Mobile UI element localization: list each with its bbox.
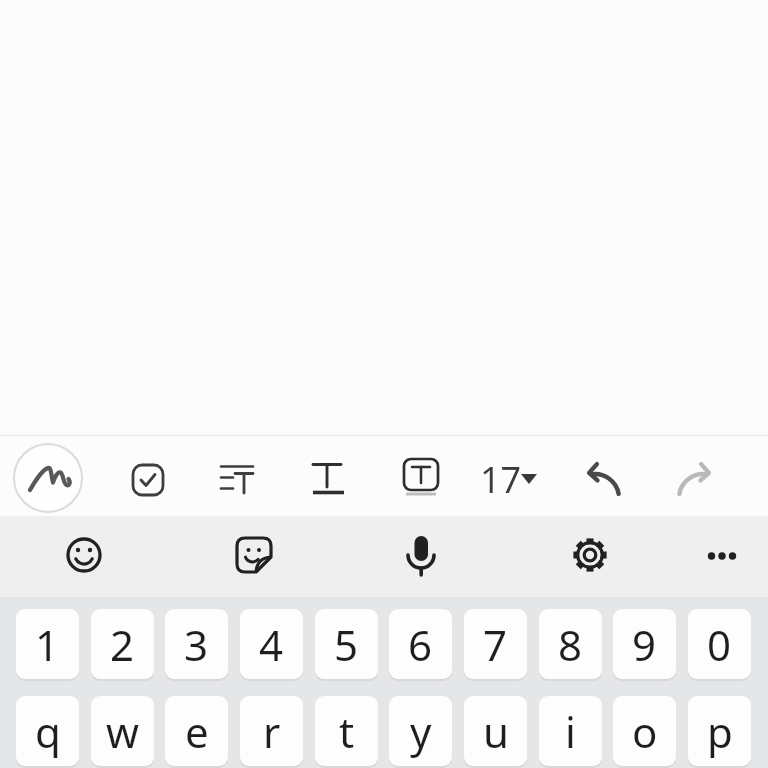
staticText: 0 bbox=[707, 616, 732, 673]
button[interactable]: 7 bbox=[464, 609, 527, 681]
staticText: u bbox=[483, 703, 509, 760]
button[interactable]: 1 bbox=[16, 609, 79, 681]
staticText: y bbox=[410, 703, 432, 760]
staticText: 1 bbox=[35, 616, 60, 673]
button[interactable] bbox=[217, 460, 257, 500]
button[interactable]: 2 bbox=[91, 609, 154, 681]
staticText: 4 bbox=[259, 616, 284, 673]
staticText: e bbox=[185, 703, 209, 760]
staticText: w bbox=[106, 703, 140, 760]
button[interactable]: r bbox=[240, 696, 303, 768]
staticText: r bbox=[263, 703, 281, 760]
button[interactable]: u bbox=[464, 696, 527, 768]
button[interactable]: 3 bbox=[165, 609, 228, 681]
button[interactable]: t bbox=[315, 696, 378, 768]
staticText: o bbox=[632, 703, 658, 760]
button[interactable]: p bbox=[688, 696, 751, 768]
button[interactable] bbox=[62, 533, 106, 577]
staticText: i bbox=[565, 703, 576, 760]
button[interactable]: 9 bbox=[613, 609, 676, 681]
button[interactable] bbox=[307, 459, 347, 499]
button[interactable]: w bbox=[91, 696, 154, 768]
staticText: 5 bbox=[334, 616, 359, 673]
button[interactable] bbox=[568, 533, 612, 577]
staticText: t bbox=[339, 703, 355, 760]
button[interactable]: o bbox=[613, 696, 676, 768]
staticText: 6 bbox=[408, 616, 433, 673]
button[interactable]: e bbox=[165, 696, 228, 768]
button[interactable] bbox=[700, 534, 744, 578]
button[interactable]: q bbox=[16, 696, 79, 768]
button[interactable]: y bbox=[389, 696, 452, 768]
button[interactable] bbox=[129, 461, 167, 499]
button[interactable]: 6 bbox=[389, 609, 452, 681]
button[interactable] bbox=[664, 455, 714, 503]
button[interactable] bbox=[576, 455, 626, 503]
button[interactable] bbox=[400, 456, 442, 498]
button[interactable]: i bbox=[539, 696, 602, 768]
button[interactable]: 4 bbox=[240, 609, 303, 681]
button[interactable]: 0 bbox=[688, 609, 751, 681]
staticText: 9 bbox=[632, 616, 657, 673]
staticText: q bbox=[35, 703, 61, 760]
button[interactable] bbox=[232, 533, 276, 577]
button[interactable] bbox=[13, 443, 83, 513]
staticText: p bbox=[707, 703, 733, 760]
button[interactable]: 5 bbox=[315, 609, 378, 681]
staticText: 3 bbox=[184, 616, 209, 673]
staticText: 17 bbox=[480, 455, 522, 503]
staticText: 7 bbox=[483, 616, 508, 673]
button[interactable]: 17 bbox=[474, 452, 546, 500]
button[interactable]: 8 bbox=[539, 609, 602, 681]
button[interactable] bbox=[404, 532, 440, 580]
staticText: 8 bbox=[558, 616, 583, 673]
staticText: 2 bbox=[110, 616, 135, 673]
